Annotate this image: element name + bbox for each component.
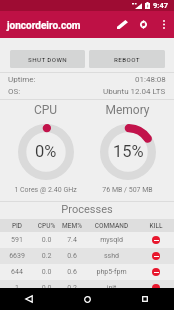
staticText: Ubuntu 12.04 LTS [103, 87, 166, 96]
staticText: SHUT DOWN [28, 56, 68, 63]
button[interactable]: Kill process php5-fpm [152, 268, 160, 276]
button[interactable]: More options [154, 11, 174, 38]
staticText: 7.4 [59, 236, 85, 244]
staticText: 0.2 [59, 284, 85, 292]
staticText: KILL [138, 222, 174, 230]
button[interactable]: Refresh [133, 11, 154, 38]
button[interactable]: Edit [111, 11, 133, 38]
staticText: PID [0, 222, 34, 230]
staticText: init [85, 284, 138, 292]
staticText: sshd [85, 252, 138, 260]
staticText: 591 [0, 236, 34, 244]
staticText: 1 Cores @ 2.40 GHz [2, 186, 89, 194]
staticText: 76 MB / 507 MB [84, 186, 171, 194]
button[interactable]: Home [58, 288, 116, 310]
button[interactable]: Kill process sshd [152, 252, 160, 260]
button[interactable]: Recent apps [116, 288, 174, 310]
staticText: 15% [113, 142, 144, 161]
staticText: REBOOT [114, 56, 140, 63]
staticText: 0% [35, 142, 57, 161]
staticText: COMMAND [85, 222, 138, 230]
staticText: OS: [8, 87, 21, 96]
staticText: php5-fpm [85, 268, 138, 276]
staticText: CPU% [34, 222, 59, 230]
staticText: CPU [2, 103, 89, 117]
staticText: 0.0 [34, 284, 59, 292]
button[interactable]: SHUT DOWN [10, 50, 85, 68]
staticText: 644 [0, 268, 34, 276]
staticText: 6639 [0, 252, 34, 260]
staticText: 0.0 [34, 268, 59, 276]
staticText: Uptime: [8, 75, 36, 84]
button[interactable]: Back [0, 288, 58, 310]
button[interactable]: Kill process init [152, 284, 160, 292]
staticText: 01:48:08 [135, 75, 166, 84]
staticText: 0.2 [34, 252, 59, 260]
button[interactable]: REBOOT [89, 50, 165, 68]
staticText: 9:47 [153, 1, 169, 10]
staticText: 0.0 [34, 236, 59, 244]
staticText: mysqld [85, 236, 138, 244]
staticText: 0.6 [59, 252, 85, 260]
staticText: 0.6 [59, 268, 85, 276]
staticText: 1 [0, 284, 34, 292]
staticText: Processes [0, 203, 174, 216]
button[interactable]: Kill process mysqld [152, 236, 160, 244]
staticText: Memory [84, 103, 171, 117]
staticText: MEM% [59, 222, 85, 230]
staticText: joncordeiro.com [7, 20, 111, 32]
